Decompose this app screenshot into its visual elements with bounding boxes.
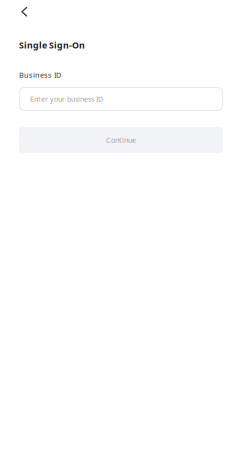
- staticText: Single Sign-On: [19, 39, 85, 51]
- button[interactable]: Enter your business ID: [19, 87, 223, 111]
- button[interactable]: Continue: [19, 127, 223, 153]
- staticText: Enter your business ID: [30, 94, 103, 104]
- staticText: Continue: [106, 135, 136, 145]
- staticText: Business ID: [19, 70, 61, 80]
- button[interactable]: Back: [0, 0, 39, 24]
